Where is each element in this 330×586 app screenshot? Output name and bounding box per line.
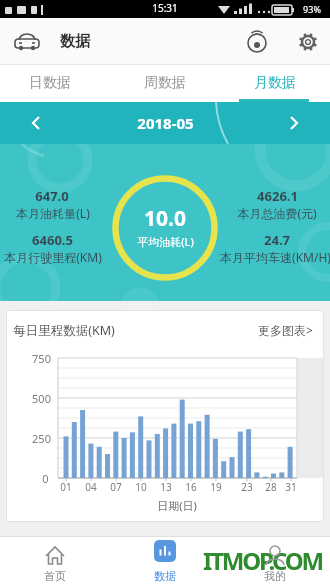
staticText: 647.0 [35,187,69,205]
staticText: 10 [135,480,147,494]
staticText: 我的 [264,569,286,583]
staticText: 月数据 [254,74,296,92]
staticText: 250 [32,431,51,446]
staticText: 4626.1 [257,187,298,205]
staticText: 750 [32,351,51,366]
staticText: 数据 [154,569,176,583]
button[interactable] [295,27,321,55]
staticText: 0 [42,471,49,486]
staticText: 10.0 [144,204,186,233]
button[interactable] [10,26,44,56]
button[interactable]: 周数据 [110,64,220,102]
button[interactable] [20,108,50,138]
staticText: 31 [285,480,297,494]
staticText: 01 [60,480,72,494]
staticText: 首页 [44,569,66,583]
staticText: 93% [303,3,321,15]
button[interactable]: 日数据 [0,64,100,102]
button[interactable]: 数据 [130,538,200,584]
staticText: 500 [32,391,51,406]
staticText: 本月平均车速(KM/H) [220,249,330,265]
staticText: 更多图表> [258,322,313,338]
button[interactable] [280,108,310,138]
staticText: 15:31 [152,1,178,15]
staticText: 19 [210,480,222,494]
staticText: 日期(日) [157,498,197,513]
staticText: ITMOP.COM [203,544,322,572]
staticText: 07 [110,480,122,494]
staticText: 24.7 [264,231,290,249]
staticText: 平均油耗(L) [137,234,194,249]
staticText: 04 [85,480,97,494]
staticText: 13 [160,480,172,494]
staticText: 本月总油费(元) [237,205,317,221]
staticText: 2018-05 [137,113,194,133]
staticText: 16 [185,480,197,494]
button[interactable]: 我的 [240,538,310,584]
staticText: 本月行驶里程(KM) [4,249,102,265]
staticText: 周数据 [144,74,186,92]
staticText: 23 [241,480,253,494]
button[interactable]: 月数据 [220,64,330,102]
staticText: 每日里程数据(KM) [13,322,115,339]
button[interactable]: 更多图表> [252,320,318,340]
staticText: 日数据 [29,74,71,92]
staticText: 数据 [60,32,90,51]
staticText: 28 [265,480,277,494]
staticText: 6460.5 [32,231,73,249]
button[interactable]: 首页 [20,538,90,584]
staticText: 本月油耗量(L) [16,205,90,221]
button[interactable] [245,27,269,55]
